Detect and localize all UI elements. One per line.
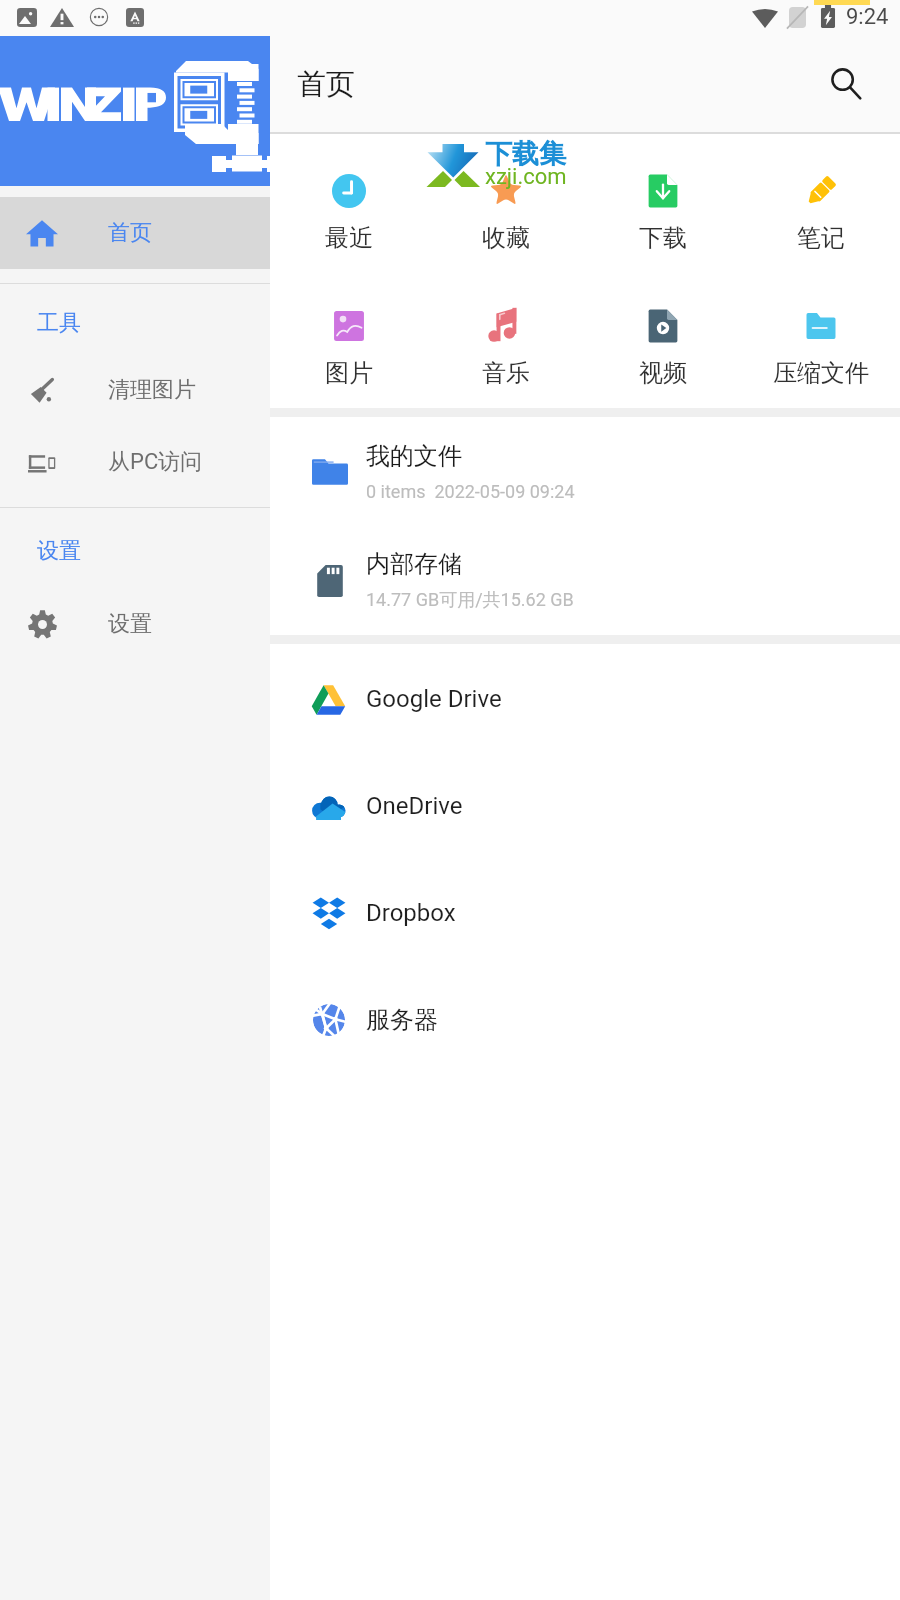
button[interactable]: Search: [818, 56, 874, 112]
staticText: 下载: [639, 223, 687, 253]
button[interactable]: 清理图片: [0, 354, 270, 426]
staticText: 设置: [108, 610, 152, 638]
staticText: 工具: [37, 309, 81, 337]
staticText: 首页: [297, 66, 355, 103]
staticText: Google Drive: [366, 685, 502, 713]
staticText: 视频: [639, 358, 687, 388]
button[interactable]: 首页: [0, 197, 270, 269]
button[interactable]: 图片: [270, 269, 427, 404]
button[interactable]: 服务器: [270, 966, 900, 1073]
staticText: 0 items 2022-05-09 09:24: [366, 481, 575, 502]
staticText: 收藏: [482, 223, 530, 253]
staticText: 清理图片: [108, 376, 196, 404]
staticText: 14.77 GB可用/共15.62 GB: [366, 589, 574, 612]
staticText: 音乐: [482, 358, 530, 388]
staticText: 首页: [108, 219, 152, 247]
staticText: 最近: [325, 223, 373, 253]
staticText: 我的文件: [366, 441, 462, 471]
button[interactable]: 视频: [584, 269, 742, 404]
button[interactable]: Google Drive: [270, 645, 900, 752]
staticText: 笔记: [797, 223, 845, 253]
button[interactable]: 音乐: [427, 269, 584, 404]
staticText: 压缩文件: [773, 358, 869, 388]
button[interactable]: 我的文件: [270, 417, 900, 526]
button[interactable]: 从PC访问: [0, 426, 270, 498]
staticText: 设置: [37, 537, 81, 565]
staticText: Dropbox: [366, 899, 456, 927]
staticText: 图片: [325, 358, 373, 388]
staticText: OneDrive: [366, 792, 463, 820]
button[interactable]: 内部存储: [270, 526, 900, 635]
staticText: 9:24: [846, 4, 889, 30]
staticText: 下载集: [485, 137, 566, 171]
staticText: 服务器: [366, 1005, 438, 1035]
button[interactable]: 设置: [0, 588, 270, 660]
staticText: 从PC访问: [108, 448, 203, 476]
button[interactable]: 下载: [584, 134, 742, 269]
staticText: 内部存储: [366, 549, 462, 579]
staticText: xzji.com: [485, 164, 567, 190]
button[interactable]: 最近: [270, 134, 427, 269]
button[interactable]: 压缩文件: [742, 269, 900, 404]
button[interactable]: 收藏: [427, 134, 584, 269]
button[interactable]: 笔记: [742, 134, 900, 269]
button[interactable]: OneDrive: [270, 752, 900, 859]
button[interactable]: Dropbox: [270, 859, 900, 966]
